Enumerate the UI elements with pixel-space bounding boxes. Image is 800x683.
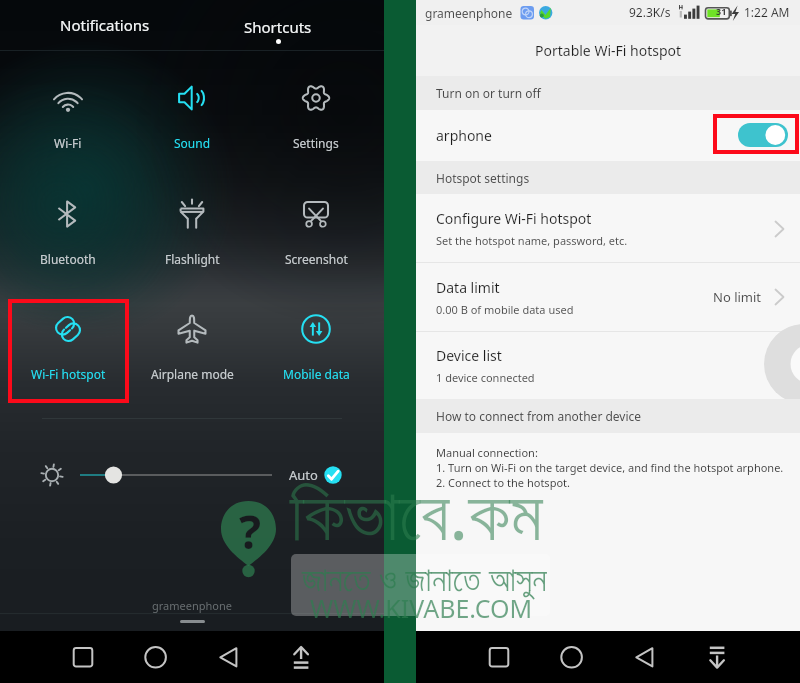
staticText: Wi-Fi hotspot xyxy=(31,366,106,382)
staticText: Settings xyxy=(293,135,339,151)
staticText: Data limit xyxy=(436,278,500,297)
staticText: Portable Wi-Fi hotspot xyxy=(535,41,682,60)
button[interactable]: Back xyxy=(620,633,668,681)
staticText: 0.00 B of mobile data used xyxy=(436,302,574,317)
button[interactable]: Shortcuts xyxy=(215,0,341,50)
staticText: 2. Connect to the hotspot. xyxy=(436,475,570,490)
staticText: Turn on or turn off xyxy=(436,85,541,101)
button[interactable]: Bluetooth xyxy=(8,183,128,275)
staticText: Mobile data xyxy=(283,366,350,382)
button[interactable]: Mobile data xyxy=(256,298,376,390)
button[interactable]: Configure Wi-Fi hotspot xyxy=(416,194,800,263)
staticText: Configure Wi-Fi hotspot xyxy=(436,209,592,228)
button[interactable]: Portable Wi-Fi hotspot on/off xyxy=(738,123,788,147)
staticText: Auto xyxy=(289,466,318,484)
staticText: 92.3K/s xyxy=(629,4,671,20)
staticText: জানতে ও জানাতে আসুন xyxy=(302,556,547,601)
button[interactable]: Back xyxy=(204,633,252,681)
button[interactable]: Wi-Fi xyxy=(8,67,128,159)
staticText: 1. Turn on Wi-Fi on the target device, a… xyxy=(436,460,784,475)
button[interactable]: Airplane mode xyxy=(132,298,252,390)
button[interactable]: Home xyxy=(131,633,179,681)
button[interactable]: Recents xyxy=(59,633,107,681)
staticText: Airplane mode xyxy=(151,366,234,382)
button[interactable]: Wi-Fi hotspot xyxy=(8,298,128,390)
button[interactable]: Screenshot xyxy=(256,183,376,275)
staticText: How to connect from another device xyxy=(436,408,642,424)
button[interactable]: Recents xyxy=(475,633,523,681)
staticText: 31 xyxy=(716,5,727,17)
button[interactable]: Flashlight xyxy=(132,183,252,275)
staticText: কিভাবে.কম xyxy=(290,463,543,561)
staticText: Hotspot settings xyxy=(436,170,530,186)
button[interactable]: Expand notification panel xyxy=(277,633,325,681)
staticText: WWW.KIVABE.COM xyxy=(310,591,533,625)
button[interactable]: arphone xyxy=(416,110,800,161)
button[interactable]: Device list xyxy=(416,332,800,399)
button[interactable]: Settings xyxy=(256,67,376,159)
staticText: Shortcuts xyxy=(244,17,312,37)
staticText: 1 device connected xyxy=(436,370,535,385)
button[interactable]: Collapse notification panel xyxy=(693,633,741,681)
staticText: No limit xyxy=(713,288,762,306)
staticText: Set the hotspot name, password, etc. xyxy=(436,233,628,248)
staticText: Manual connection: xyxy=(436,445,538,460)
staticText: Sound xyxy=(174,135,211,151)
staticText: Flashlight xyxy=(165,251,220,267)
button[interactable]: Sound xyxy=(132,67,252,159)
staticText: Notifications xyxy=(60,15,150,35)
staticText: Screenshot xyxy=(285,251,348,267)
staticText: grameenphone xyxy=(152,598,232,613)
staticText: Bluetooth xyxy=(40,251,96,267)
button[interactable]: Home xyxy=(547,633,595,681)
staticText: Device list xyxy=(436,346,502,365)
staticText: Wi-Fi xyxy=(54,135,82,151)
button[interactable]: Data limit xyxy=(416,263,800,331)
staticText: 1:22 AM xyxy=(744,4,790,20)
staticText: grameenphone xyxy=(425,5,513,21)
staticText: ? xyxy=(239,500,261,558)
button[interactable]: Notifications xyxy=(42,0,168,50)
staticText: arphone xyxy=(436,126,492,145)
